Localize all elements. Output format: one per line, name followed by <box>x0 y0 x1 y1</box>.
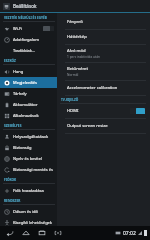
staticText: Háttérkép <box>67 34 87 40</box>
staticText: TV-KIJELZŐ <box>61 98 79 102</box>
staticText: Adatforgalom <box>13 37 54 42</box>
button[interactable]: Betűméret <box>57 63 150 81</box>
staticText: Beállítások <box>13 3 37 9</box>
staticText: Accelerometer calibration <box>67 85 118 91</box>
staticText: 07:02 <box>123 230 136 237</box>
staticText: Alkalmazások <box>13 113 54 118</box>
button[interactable]: Fényerő <box>57 15 150 30</box>
staticText: Wi-Fi <box>13 26 43 31</box>
staticText: Dátum és idő <box>13 209 54 214</box>
staticText: Normál <box>67 73 79 77</box>
button[interactable]: Dátum és idő <box>0 206 57 217</box>
button[interactable]: Kikapcsolva <box>43 26 54 31</box>
button[interactable]: Bekapcsolva <box>130 108 145 114</box>
button[interactable]: Accelerometer calibration <box>57 81 150 96</box>
button[interactable]: Képernyőkép <box>51 227 65 239</box>
button[interactable]: Fejlesztői lehetőségek <box>0 228 57 239</box>
staticText: Tárhely <box>13 91 54 96</box>
button[interactable]: Wi-Fi <box>0 23 57 34</box>
button[interactable]: Hang <box>0 66 57 77</box>
staticText: Alvó mód <box>67 48 86 54</box>
button[interactable]: Alvó mód <box>57 45 150 63</box>
button[interactable]: Beállítások <box>0 0 150 12</box>
staticText: Kisegítő lehetőségek <box>13 220 54 225</box>
staticText: Fényerő <box>67 19 83 25</box>
button[interactable]: Továbbiak... <box>0 45 57 56</box>
staticText: Biztonság <box>13 145 54 150</box>
staticText: Akkumulátor <box>13 102 54 107</box>
button[interactable]: Legutóbbi alkalmazások <box>35 227 49 239</box>
button[interactable]: Biztonsági mentés és <box>0 164 57 175</box>
button[interactable]: Akkumulátor <box>0 99 57 110</box>
button[interactable]: HDMI <box>57 104 150 119</box>
button[interactable]: Tárhely <box>0 88 57 99</box>
button[interactable]: Kezdőképernyő <box>19 227 33 239</box>
staticText: SZEMÉLYES <box>4 124 22 128</box>
staticText: Hang <box>13 69 54 74</box>
button[interactable]: Megjelenítés <box>0 77 57 88</box>
staticText: HDMI <box>67 108 79 114</box>
button[interactable]: Biztonság <box>0 142 57 153</box>
button[interactable]: Alkalmazások <box>0 110 57 121</box>
staticText: Fiók hozzáadása <box>13 188 54 193</box>
staticText: RENDSZER <box>4 199 21 203</box>
button[interactable]: Kisegítő lehetőségek <box>0 217 57 228</box>
staticText: Fejlesztői lehetőségek <box>13 231 54 236</box>
button[interactable]: Fiók hozzáadása <box>0 185 57 196</box>
button[interactable]: Helyszolgáltatások <box>0 131 57 142</box>
button[interactable]: Nyelv és bevitel <box>0 153 57 164</box>
staticText: VEZETÉK NÉLKÜLI ÉS EGYÉB HÁLÓZATOK <box>4 16 47 20</box>
button[interactable]: Adatforgalom <box>0 34 57 45</box>
staticText: Biztonsági mentés és <box>13 167 54 172</box>
staticText: Nyelv és bevitel <box>13 156 54 161</box>
staticText: Betűméret <box>67 66 88 72</box>
staticText: 1 perc inaktivitás után <box>67 55 100 59</box>
staticText: FIÓKOK <box>4 178 17 182</box>
button[interactable]: Vissza <box>3 227 17 239</box>
button[interactable]: Output screen resize <box>57 119 150 134</box>
staticText: Továbbiak... <box>13 48 54 53</box>
staticText: Helyszolgáltatások <box>13 134 54 139</box>
button[interactable]: Háttérkép <box>57 30 150 45</box>
staticText: Megjelenítés <box>13 80 54 85</box>
staticText: ESZKÖZ <box>4 59 16 63</box>
staticText: Output screen resize <box>67 123 108 129</box>
